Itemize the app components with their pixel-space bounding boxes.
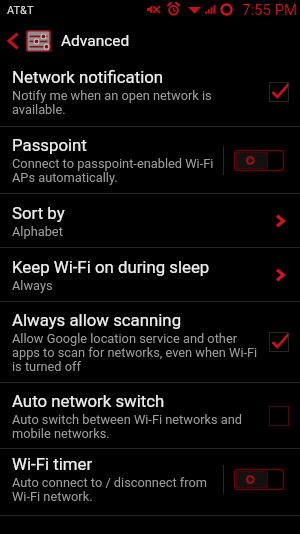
staticText: Auto connect to / disconnect from Wi-Fi … — [12, 475, 217, 504]
staticText: Auto network switch — [12, 391, 165, 411]
staticText: Connect to passpoint-enabled Wi-Fi APs a… — [12, 156, 217, 185]
staticText: Advanced — [61, 32, 130, 50]
staticText: Allow Google location service and other … — [12, 331, 263, 374]
staticText: 7:55 PM — [242, 1, 298, 19]
staticText: Always — [12, 278, 53, 293]
staticText: Notify me when an open network is availa… — [12, 88, 263, 117]
staticText: Alphabet — [12, 224, 63, 239]
button[interactable]: Keep Wi-Fi on during sleep — [0, 248, 300, 301]
button[interactable]: Always allow scanning — [0, 302, 300, 382]
staticText: Network notification — [12, 67, 164, 87]
button[interactable]: Passpoint — [0, 127, 300, 193]
staticText: Passpoint — [12, 135, 87, 155]
button[interactable]: Back — [0, 23, 26, 58]
staticText: Sort by — [12, 203, 65, 223]
staticText: Auto switch between Wi-Fi networks and m… — [12, 412, 263, 441]
staticText: Keep Wi-Fi on during sleep — [12, 257, 210, 277]
button[interactable]: Auto network switch — [0, 383, 300, 448]
staticText: Always allow scanning — [12, 310, 182, 330]
staticText: Wi-Fi timer — [12, 454, 93, 474]
button[interactable]: Sort by — [0, 194, 300, 247]
button[interactable]: Wi-Fi timer — [0, 449, 300, 515]
button[interactable]: Network notification — [0, 58, 300, 126]
staticText: AT&T — [7, 4, 34, 17]
